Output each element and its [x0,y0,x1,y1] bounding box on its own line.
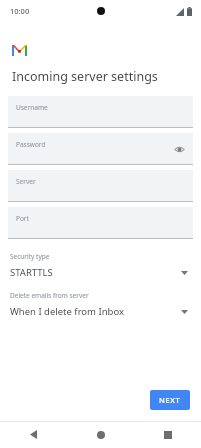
button[interactable]: Port [8,207,193,239]
staticText: 10:00 [10,6,30,16]
button[interactable]: Show password [173,143,185,155]
staticText: When I delete from Inbox [10,305,124,318]
other: Expand Delete emails from server [179,307,189,317]
staticText: Incoming server settings [12,68,158,85]
button[interactable]: Home [67,421,134,448]
staticText: STARTTLS [10,266,53,279]
button[interactable]: Username [8,96,193,128]
staticText: NEXT [159,395,181,405]
button[interactable]: Server [8,170,193,202]
button[interactable]: Delete emails from server [10,291,191,318]
staticText: Server [16,177,36,186]
button[interactable]: Back [0,421,67,448]
staticText: Delete emails from server [10,291,89,300]
button[interactable]: Recent apps [134,421,201,448]
button[interactable]: NEXT [150,390,190,410]
button[interactable]: Password [8,133,193,165]
staticText: Security type [10,252,50,261]
button[interactable]: Security type [10,252,191,279]
other: Expand Security type [179,268,189,278]
staticText: Username [16,103,48,112]
staticText: Port [16,214,29,223]
staticText: Password [16,140,46,149]
